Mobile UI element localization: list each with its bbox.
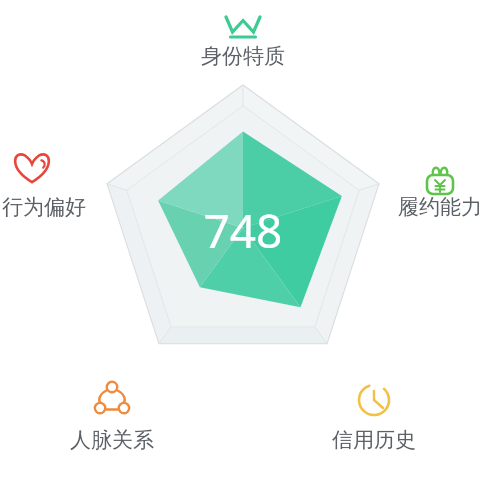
button[interactable]: Credit score radar chart, 748 <box>0 0 488 483</box>
